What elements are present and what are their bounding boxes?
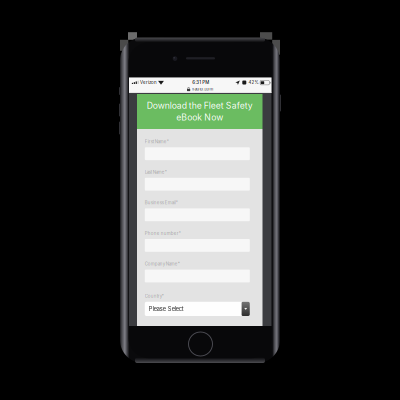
staticText: Download the Fleet Safety	[147, 100, 253, 111]
button[interactable]: First Name*	[145, 139, 250, 160]
staticText: Phone number*	[145, 231, 181, 236]
staticText: eBook Now	[176, 112, 223, 123]
staticText: Business Email*	[145, 200, 178, 205]
staticText: Country*	[145, 293, 164, 299]
staticText: Verizon	[140, 80, 157, 85]
staticText: 42%	[248, 80, 258, 85]
staticText: First Name*	[145, 139, 169, 144]
staticText: Last Name*	[145, 169, 167, 175]
button[interactable]: Last Name*	[145, 170, 250, 191]
button[interactable]: Business Email*	[145, 200, 250, 221]
staticText: Company Name*	[145, 261, 180, 267]
button[interactable]: Country*	[145, 294, 250, 316]
staticText: 6:31 PM	[192, 80, 209, 85]
button[interactable]: Phone number*	[145, 231, 250, 252]
staticText: nauto.com	[191, 86, 213, 92]
staticText: Please Select	[149, 305, 184, 312]
button[interactable]: Company Name*	[145, 262, 250, 282]
